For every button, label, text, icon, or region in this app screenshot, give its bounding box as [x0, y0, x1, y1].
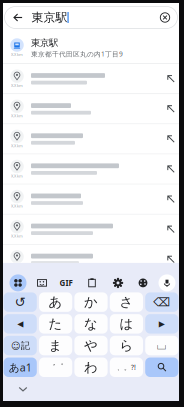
- button[interactable]: ▶: [145, 314, 178, 334]
- button[interactable]: Settings: [105, 274, 131, 292]
- button[interactable]: Hide keyboard: [8, 380, 38, 398]
- button[interactable]: さ: [110, 292, 143, 312]
- button[interactable]: X.X km: [0, 245, 182, 263]
- staticText: ☺記: [11, 340, 30, 351]
- staticText: あa1: [9, 360, 32, 374]
- button[interactable]: ⌫: [145, 292, 178, 312]
- button[interactable]: Keyboard tools: [5, 274, 31, 292]
- button[interactable]: Voice input: [155, 274, 179, 292]
- staticText: X.X km: [11, 203, 23, 209]
- button[interactable]: ま: [39, 336, 72, 355]
- staticText: ▶: [159, 319, 165, 328]
- button[interactable]: X.X km: [0, 215, 182, 244]
- button[interactable]: X.X km: [0, 184, 182, 214]
- staticText: か: [84, 294, 98, 310]
- staticText: さ: [119, 294, 133, 310]
- staticText: あ: [49, 294, 63, 310]
- button[interactable]: Stickers: [31, 274, 53, 292]
- button[interactable]: X.X km: [0, 32, 182, 63]
- staticText: 、。?!: [117, 363, 136, 372]
- button[interactable]: X.X km: [0, 154, 182, 184]
- button[interactable]: Clipboard: [79, 274, 105, 292]
- staticText: X.X km: [11, 83, 23, 88]
- staticText: ↺: [15, 295, 26, 310]
- button[interactable]: Back: [4, 6, 31, 28]
- staticText: ゛゜: [48, 362, 64, 372]
- staticText: 東京駅: [31, 37, 58, 48]
- button[interactable]: わ: [74, 357, 108, 377]
- staticText: X.X km: [11, 173, 23, 178]
- button[interactable]: な: [74, 314, 108, 334]
- button[interactable]: [145, 357, 178, 377]
- button[interactable]: ら: [110, 336, 143, 355]
- button[interactable]: ⌴: [145, 336, 178, 355]
- button[interactable]: Themes: [131, 274, 155, 292]
- staticText: 東京駅: [31, 10, 67, 25]
- button[interactable]: X.X km: [0, 124, 182, 154]
- staticText: ま: [49, 337, 63, 354]
- staticText: ⌫: [153, 295, 170, 309]
- button[interactable]: ☺記: [4, 336, 37, 355]
- button[interactable]: ◀: [4, 314, 37, 334]
- button[interactable]: は: [110, 314, 143, 334]
- staticText: ら: [119, 337, 133, 354]
- button[interactable]: Clear search: [152, 6, 177, 28]
- staticText: X.X km: [11, 113, 23, 118]
- staticText: ⌴: [157, 340, 167, 351]
- button[interactable]: 、。?!: [110, 357, 143, 377]
- staticText: わ: [84, 359, 98, 375]
- button[interactable]: ゛゜: [39, 357, 72, 377]
- button[interactable]: X.X km: [0, 64, 182, 93]
- staticText: X.X km: [11, 233, 23, 239]
- staticText: X.X km: [11, 52, 23, 57]
- staticText: た: [49, 316, 63, 332]
- button[interactable]: ↺: [4, 292, 37, 312]
- staticText: は: [119, 316, 133, 332]
- button[interactable]: や: [74, 336, 108, 355]
- button[interactable]: X.X km: [0, 94, 182, 124]
- button[interactable]: た: [39, 314, 72, 334]
- staticText: な: [84, 316, 98, 332]
- staticText: GIF: [59, 278, 72, 288]
- button[interactable]: あa1: [4, 357, 37, 377]
- button[interactable]: GIF: [53, 274, 79, 292]
- button[interactable]: あ: [39, 292, 72, 312]
- staticText: 東京都千代田区丸の内1丁目9: [31, 49, 123, 58]
- staticText: や: [84, 337, 98, 354]
- staticText: X.X km: [11, 143, 23, 148]
- staticText: ◀: [17, 319, 23, 328]
- button[interactable]: か: [74, 292, 108, 312]
